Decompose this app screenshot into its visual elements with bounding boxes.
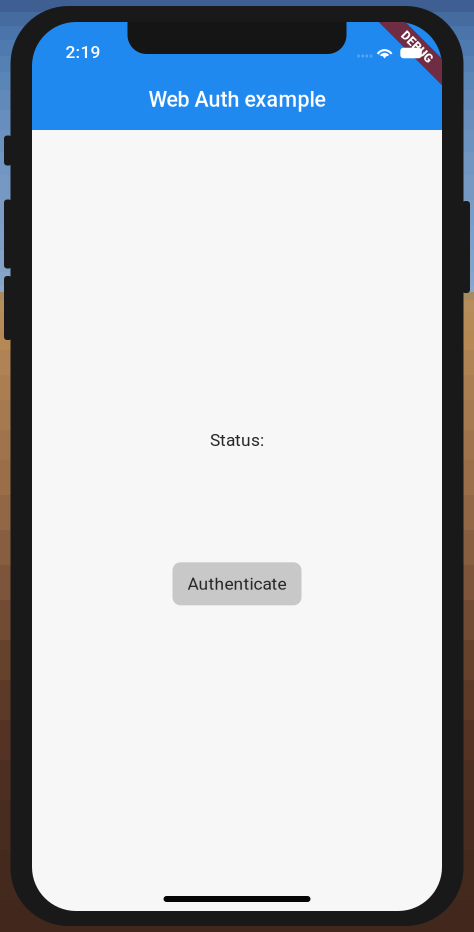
staticText: DEBUG (397, 40, 436, 54)
staticText: Web Auth example (148, 87, 325, 112)
button[interactable]: Authenticate (172, 562, 301, 605)
staticText: 2:19 (65, 42, 100, 62)
staticText: Authenticate (187, 574, 286, 594)
staticText: Status: (210, 430, 264, 450)
